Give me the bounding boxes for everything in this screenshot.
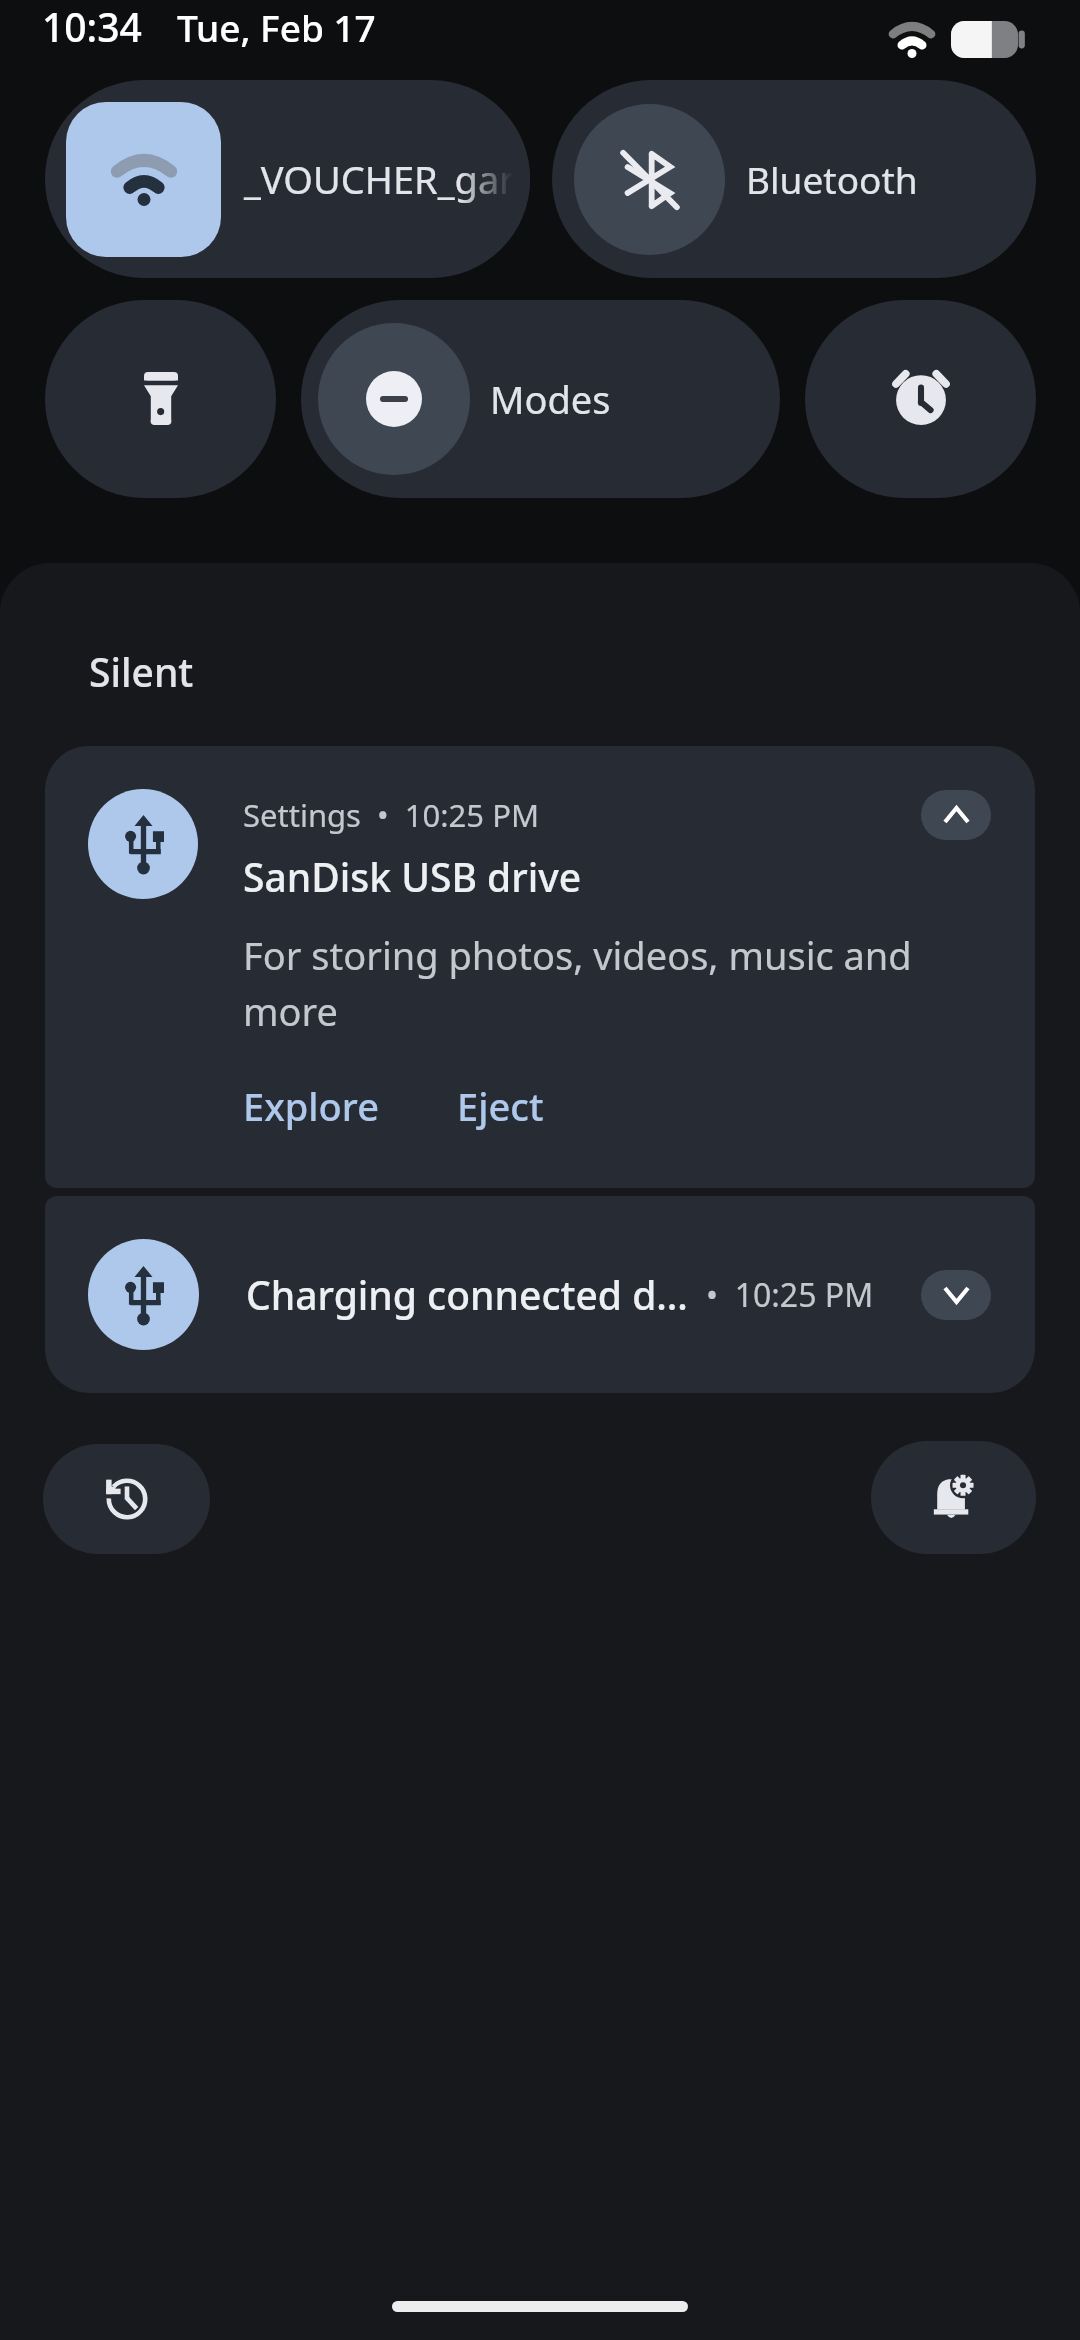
staticText: Eject [457,1080,544,1132]
staticText: For storing photos, videos, music and mo… [243,929,933,1037]
button[interactable]: Settings • 10:25 PM [45,746,1035,1188]
button[interactable]: _VOUCHER_gar [45,80,530,278]
staticText: _VOUCHER_gar [244,153,515,205]
button[interactable]: Notification settings [871,1441,1036,1554]
button[interactable]: Modes [301,300,780,498]
staticText: SanDisk USB drive [243,850,582,903]
button[interactable]: Alarm [805,300,1036,498]
staticText: Charging connected d… [246,1268,688,1321]
staticText: Modes [490,373,611,425]
staticText: Bluetooth [746,154,918,204]
button[interactable]: Explore [243,1080,379,1132]
button[interactable]: Charging connected d… [45,1196,1035,1393]
button[interactable]: Eject [457,1080,544,1132]
button[interactable]: Bluetooth [552,80,1036,278]
button[interactable]: Expand [921,1270,991,1320]
staticText: • 10:25 PM [706,1273,874,1317]
button[interactable]: Collapse [921,790,991,840]
staticText: Tue, Feb 17 [177,2,376,52]
staticText: Silent [89,645,194,698]
staticText: Explore [243,1080,379,1132]
button[interactable]: Flashlight [45,300,276,498]
staticText: Settings • 10:25 PM [243,794,540,836]
staticText: 10:34 [42,0,142,53]
button[interactable]: Notification history [43,1444,210,1554]
